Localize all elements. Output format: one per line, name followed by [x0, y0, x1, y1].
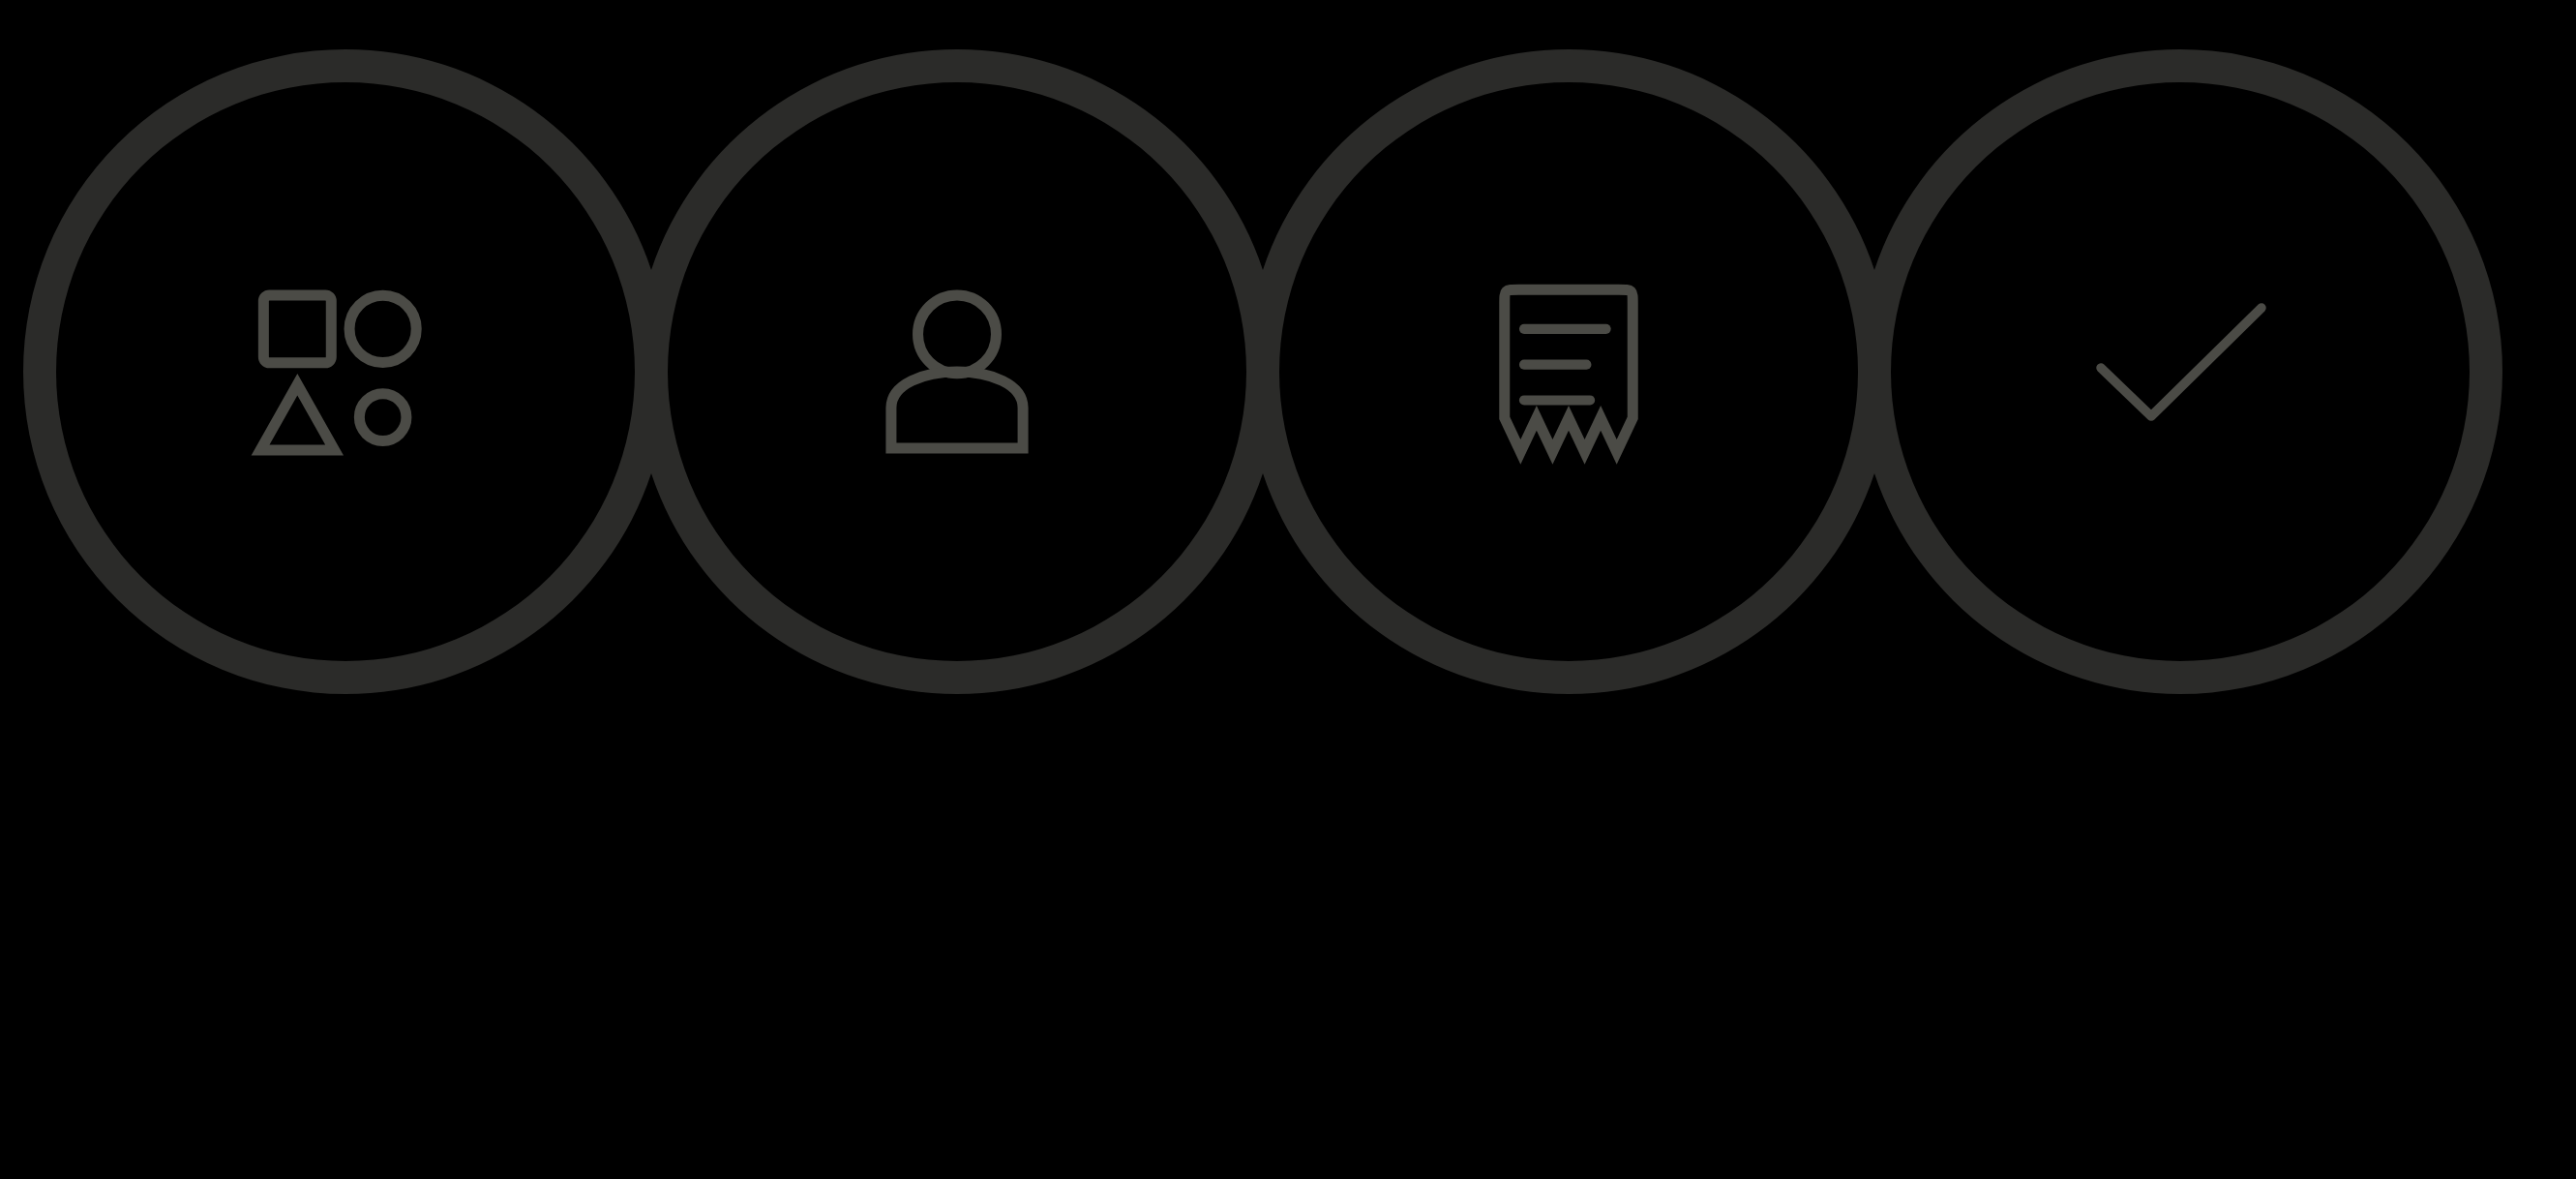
button[interactable]: Categories	[40, 66, 651, 678]
button[interactable]: Profile	[651, 66, 1263, 678]
button[interactable]: Receipts	[1263, 66, 1874, 678]
button[interactable]: Done	[1874, 66, 2486, 678]
